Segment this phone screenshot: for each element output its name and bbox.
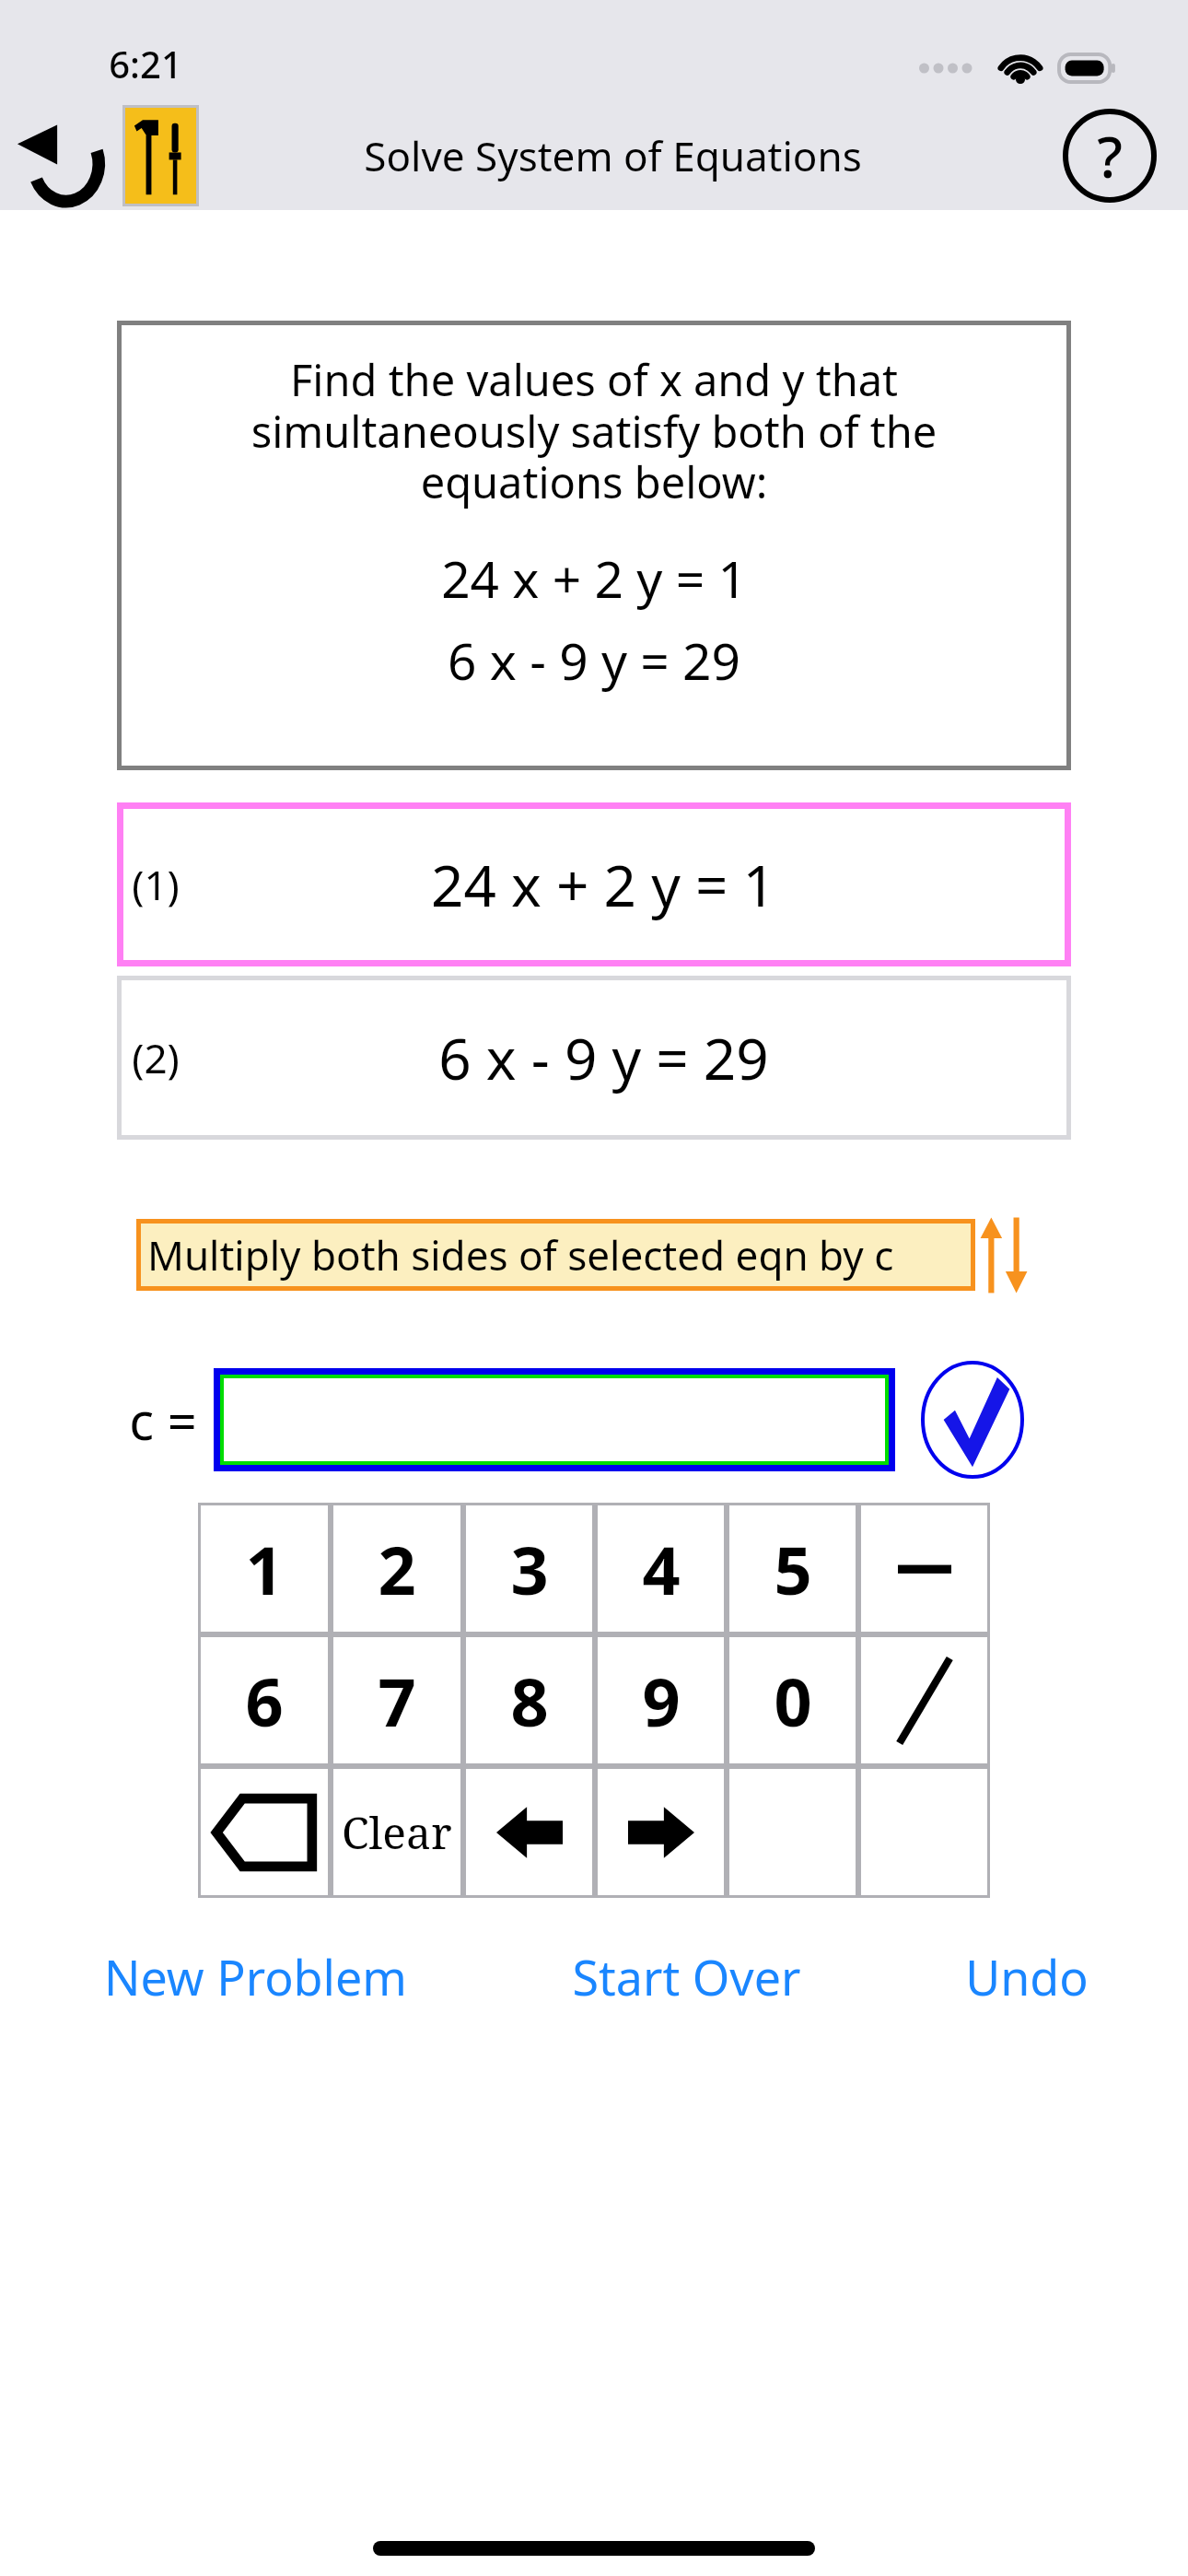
button[interactable] — [220, 1375, 889, 1465]
button[interactable]: Change operation — [975, 1213, 1032, 1296]
staticText: 6:21 — [109, 39, 182, 88]
button[interactable]: Help — [1059, 105, 1160, 206]
button[interactable]: Tools — [125, 108, 196, 204]
button[interactable]: Undo — [958, 1937, 1096, 2017]
button[interactable]: New Problem — [97, 1937, 414, 2017]
staticText: 7 — [378, 1656, 416, 1746]
button[interactable]: 3 — [463, 1503, 595, 1634]
staticText: Find the values of x and y that simultan… — [117, 350, 1071, 510]
button[interactable] — [727, 1766, 858, 1898]
button[interactable]: (2) — [117, 976, 1071, 1140]
button[interactable]: Right — [595, 1766, 727, 1898]
staticText: 6 x - 9 y = 29 — [448, 626, 740, 695]
button[interactable]: Start Over — [565, 1937, 809, 2017]
staticText: Undo — [965, 1944, 1089, 2009]
staticText: 4 — [642, 1524, 681, 1614]
staticText: Solve System of Equations — [364, 128, 862, 183]
staticText: 0 — [774, 1656, 812, 1746]
button[interactable]: Delete — [198, 1766, 331, 1898]
staticText: 9 — [642, 1656, 681, 1746]
staticText: 3 — [510, 1524, 549, 1614]
button[interactable]: 5 — [727, 1503, 858, 1634]
button[interactable] — [858, 1503, 990, 1634]
button[interactable]: Back — [9, 110, 111, 202]
button[interactable]: 7 — [331, 1634, 463, 1766]
staticText: 6 x - 9 y = 29 — [438, 1019, 769, 1096]
staticText: (1) — [132, 857, 180, 912]
other: Delete — [215, 1795, 314, 1870]
staticText: 2 — [378, 1524, 416, 1614]
staticText: 6 — [245, 1656, 284, 1746]
button[interactable]: 6 — [198, 1634, 331, 1766]
button[interactable]: 2 — [331, 1503, 463, 1634]
button[interactable]: 9 — [595, 1634, 727, 1766]
staticText: (2) — [132, 1030, 180, 1085]
staticText: 5 — [774, 1524, 812, 1614]
staticText: 24 x + 2 y = 1 — [431, 846, 775, 923]
staticText: Clear — [342, 1802, 452, 1862]
button[interactable]: 0 — [727, 1634, 858, 1766]
other: Right — [628, 1806, 694, 1859]
button[interactable]: 1 — [198, 1503, 331, 1634]
button[interactable]: Clear — [331, 1766, 463, 1898]
other: Left — [496, 1806, 563, 1859]
button[interactable]: Multiply both sides of selected eqn by c — [136, 1219, 975, 1291]
staticText: 1 — [245, 1524, 284, 1614]
button[interactable]: 4 — [595, 1503, 727, 1634]
staticText: New Problem — [104, 1944, 407, 2009]
button[interactable]: 8 — [463, 1634, 595, 1766]
staticText: 8 — [510, 1656, 549, 1746]
button[interactable]: Left — [463, 1766, 595, 1898]
staticText: ? — [1097, 117, 1123, 194]
button[interactable] — [858, 1634, 990, 1766]
staticText: 24 x + 2 y = 1 — [441, 544, 747, 613]
staticText: Start Over — [572, 1944, 801, 2009]
button[interactable]: Submit — [921, 1361, 1024, 1479]
button[interactable]: (1) — [117, 802, 1071, 966]
button[interactable] — [858, 1766, 990, 1898]
staticText: c = — [129, 1385, 197, 1455]
staticText: Multiply both sides of selected eqn by c — [147, 1227, 894, 1282]
